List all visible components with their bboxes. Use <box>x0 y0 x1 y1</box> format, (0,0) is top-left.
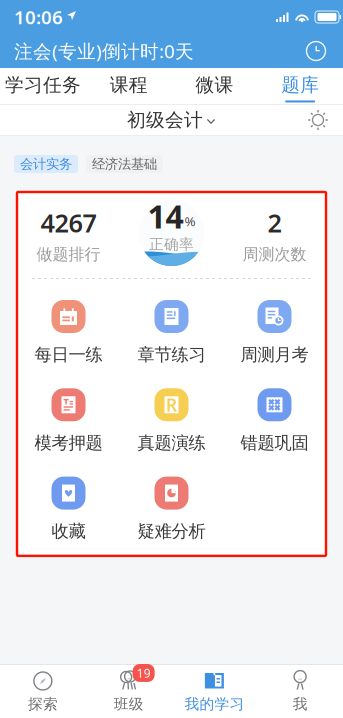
staticText: 班级 <box>114 695 144 713</box>
button[interactable]: 初级会计 <box>127 108 216 131</box>
staticText: 课程 <box>110 73 148 96</box>
button[interactable]: Countdown timer <box>303 38 329 64</box>
staticText: 学习任务 <box>5 73 81 96</box>
button[interactable]: 疑难分析 <box>120 477 223 542</box>
staticText: 注会(专业)倒计时:0天 <box>14 39 194 63</box>
staticText: 探索 <box>28 695 58 713</box>
staticText: 收藏 <box>51 521 85 542</box>
button[interactable]: 学习任务 <box>0 65 86 106</box>
button[interactable]: Brightness <box>307 109 329 131</box>
staticText: 周测月考 <box>240 344 308 365</box>
button[interactable]: 19 <box>86 670 172 713</box>
staticText: 19 <box>137 665 151 681</box>
staticText: 真题演练 <box>137 432 205 454</box>
staticText: 章节练习 <box>137 344 205 365</box>
button[interactable]: 探索 <box>0 670 86 713</box>
button[interactable]: 模考押题 <box>17 388 120 454</box>
staticText: R <box>166 393 177 416</box>
button[interactable]: R <box>120 388 223 454</box>
staticText: 我 <box>293 695 308 713</box>
button[interactable]: 收藏 <box>17 477 120 542</box>
staticText: 题库 <box>281 73 319 96</box>
staticText: 会计实务 <box>20 156 72 172</box>
staticText: 10:06 <box>14 5 63 29</box>
button[interactable]: 章节练习 <box>120 300 223 365</box>
button[interactable]: 微课 <box>171 65 257 106</box>
staticText: 正确率 <box>149 235 194 253</box>
staticText: 4267 <box>40 206 96 239</box>
staticText: 疑难分析 <box>137 521 205 542</box>
staticText: 错题巩固 <box>240 432 308 454</box>
staticText: 周测次数 <box>242 244 306 264</box>
button[interactable]: 题库 <box>257 65 343 106</box>
button[interactable]: 每日一练 <box>17 300 120 365</box>
staticText: 微课 <box>195 73 233 96</box>
button[interactable]: 经济法基础 <box>86 155 163 173</box>
button[interactable]: 错题巩固 <box>223 388 326 454</box>
staticText: % <box>184 212 195 230</box>
button[interactable]: 会计实务 <box>14 155 78 173</box>
button[interactable]: 我 <box>257 670 343 713</box>
button[interactable]: 课程 <box>86 65 172 106</box>
staticText: 每日一练 <box>34 344 102 365</box>
staticText: 2 <box>267 206 281 239</box>
staticText: 14 <box>147 195 183 237</box>
staticText: 做题排行 <box>36 244 100 264</box>
staticText: 我的学习 <box>184 695 244 713</box>
staticText: 初级会计 <box>127 108 203 131</box>
button[interactable]: 周测月考 <box>223 300 326 365</box>
button[interactable]: 我的学习 <box>171 670 257 713</box>
staticText: 模考押题 <box>34 432 102 454</box>
staticText: 经济法基础 <box>92 156 157 172</box>
